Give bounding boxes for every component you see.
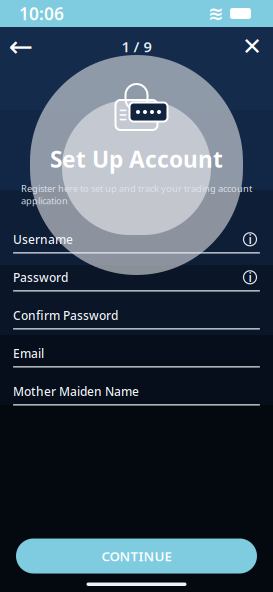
- staticText: Username: [13, 231, 73, 247]
- staticText: ←: [8, 30, 33, 63]
- staticText: 1 / 9: [121, 37, 151, 56]
- button[interactable]: Mother Maiden Name: [13, 373, 260, 411]
- button[interactable]: Email: [13, 335, 260, 373]
- staticText: Confirm Password: [13, 307, 118, 323]
- button[interactable]: Password: [13, 259, 260, 297]
- staticText: Mother Maiden Name: [13, 383, 139, 399]
- staticText: ≋: [208, 3, 224, 24]
- staticText: ✕: [242, 33, 262, 60]
- button[interactable]: Back: [0, 27, 42, 66]
- button[interactable]: More information: [240, 267, 260, 287]
- staticText: Email: [13, 345, 44, 361]
- staticText: i: [248, 269, 251, 285]
- staticText: Register here to set up and track your t…: [21, 182, 252, 207]
- button[interactable]: CONTINUE: [16, 538, 257, 573]
- staticText: Set Up Account: [50, 144, 223, 174]
- button[interactable]: Username: [13, 221, 260, 259]
- staticText: Password: [13, 269, 68, 285]
- staticText: CONTINUE: [101, 547, 171, 565]
- button[interactable]: Close: [231, 27, 273, 66]
- button[interactable]: More information: [240, 229, 260, 249]
- staticText: 10:06: [19, 2, 64, 25]
- staticText: i: [248, 231, 251, 247]
- button[interactable]: Confirm Password: [13, 297, 260, 335]
